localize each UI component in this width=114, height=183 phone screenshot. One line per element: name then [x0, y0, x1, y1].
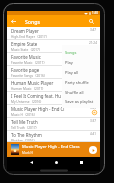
staticText: Music State (2017)	[11, 48, 40, 52]
staticText: 3:47	[90, 28, 97, 32]
staticText: 4:41	[90, 132, 97, 136]
staticText: Tell Truth (2017)	[11, 126, 37, 130]
staticText: Play	[65, 60, 73, 65]
button[interactable]: Play	[62, 57, 100, 67]
staticText: Music Player High - End Class	[22, 144, 80, 150]
button[interactable]: Home	[44, 157, 69, 167]
staticText: Shuffle all	[65, 90, 84, 95]
button[interactable]: Play	[87, 144, 98, 155]
staticText: Save as playlist	[65, 99, 94, 104]
staticText: I Feel It Coming feat. Hu	[11, 93, 61, 99]
button[interactable]: Back	[7, 15, 20, 27]
staticText: 3:37	[90, 119, 97, 123]
staticText: Favorite Music	[11, 54, 41, 60]
staticText: Mark H	[22, 151, 33, 155]
staticText: 21:24	[89, 41, 97, 45]
staticText: Music Player High - End Cl	[11, 106, 65, 112]
button[interactable]: Favorite Music	[7, 53, 100, 66]
button[interactable]: I Feel It Coming feat. Hu	[7, 92, 100, 105]
button[interactable]: Play all	[62, 67, 100, 77]
staticText: Tell Me Truth	[11, 119, 38, 125]
staticText: Favorite page	[11, 67, 40, 73]
button[interactable]: To The Rhythm	[7, 131, 100, 142]
button[interactable]: Human Music Player	[7, 79, 100, 92]
staticText: Human Music Player	[11, 80, 54, 86]
staticText: Human Music (2017)	[11, 87, 44, 91]
button[interactable]: Favorite page	[7, 66, 100, 79]
staticText: Favorite Music (2017)	[11, 61, 45, 65]
button[interactable]: Tell Me Truth	[7, 118, 100, 131]
button[interactable]: Dream Player	[7, 27, 100, 40]
button[interactable]: Music Player High - End Class	[7, 142, 100, 157]
button[interactable]: Party shuffle	[62, 77, 100, 87]
staticText: Songs	[25, 18, 41, 25]
button[interactable]: Recents	[69, 157, 94, 167]
button[interactable]: Empire State	[7, 40, 100, 53]
staticText: Play all	[65, 70, 79, 75]
staticText: My Universe (2016)	[11, 100, 42, 104]
button[interactable]: Back	[19, 157, 44, 167]
staticText: 1:30	[92, 11, 98, 15]
button[interactable]: Music Player High - End Cl	[7, 105, 100, 118]
button[interactable]: Search	[86, 15, 97, 27]
staticText: 5:09	[90, 106, 97, 110]
staticText: Party shuffle	[65, 80, 89, 85]
button[interactable]: Save as playlist	[62, 97, 100, 106]
staticText: Favorite Songs (2016)	[11, 74, 45, 78]
staticText: Rhythm (2016)	[11, 139, 35, 142]
staticText: To The Rhythm	[11, 132, 42, 138]
staticText: Songs	[65, 50, 77, 55]
staticText: Music H (2016)	[11, 113, 35, 117]
staticText: Dream Player	[11, 28, 39, 34]
button[interactable]: Shuffle all	[62, 87, 100, 97]
staticText: Empire State	[11, 41, 38, 47]
button[interactable]: Songs	[62, 47, 100, 57]
staticText: High-End Player (2017)	[11, 35, 47, 39]
